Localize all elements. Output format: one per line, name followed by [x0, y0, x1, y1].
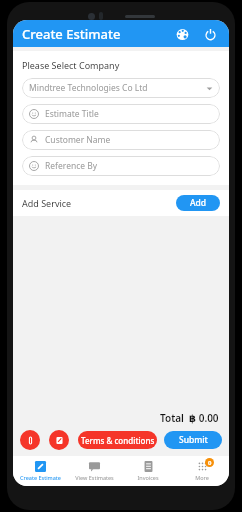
button[interactable]: Terms & conditions — [78, 431, 157, 449]
button[interactable]: Reference By — [22, 156, 220, 176]
staticText: 0 — [208, 459, 212, 467]
staticText: View Estimates — [75, 474, 114, 481]
staticText: Estimate Title — [45, 108, 213, 120]
button[interactable]: Create Estimate — [13, 456, 67, 486]
staticText: Customer Name — [45, 134, 213, 146]
staticText: Total ฿ 0.00 — [160, 411, 219, 425]
staticText: Please Select Company — [22, 59, 120, 71]
staticText: Invoices — [137, 474, 159, 481]
button[interactable]: Customer Name — [22, 130, 220, 150]
staticText: More — [195, 474, 209, 481]
button[interactable]: View Estimates — [67, 456, 121, 486]
button[interactable]: Estimate Title — [22, 104, 220, 124]
staticText: Add Service — [22, 197, 72, 209]
staticText: Terms & conditions — [81, 435, 155, 446]
staticText: Reference By — [45, 160, 213, 172]
button[interactable]: Edit note — [49, 430, 69, 450]
button[interactable]: 0 — [175, 456, 229, 486]
staticText: Create Estimate — [20, 474, 61, 481]
button[interactable]: Mindtree Technologies Co Ltd — [22, 78, 220, 98]
button[interactable]: Attach file — [20, 430, 40, 450]
button[interactable]: Invoices — [121, 456, 175, 486]
staticText: Add — [190, 197, 207, 209]
staticText: Mindtree Technologies Co Ltd — [29, 82, 206, 94]
button[interactable]: Add — [176, 195, 220, 211]
staticText: Submit — [179, 434, 208, 446]
button[interactable]: Logout — [199, 23, 221, 45]
staticText: Create Estimate — [22, 25, 121, 43]
button[interactable]: Submit — [164, 431, 222, 449]
button[interactable]: Theme palette — [171, 23, 193, 45]
